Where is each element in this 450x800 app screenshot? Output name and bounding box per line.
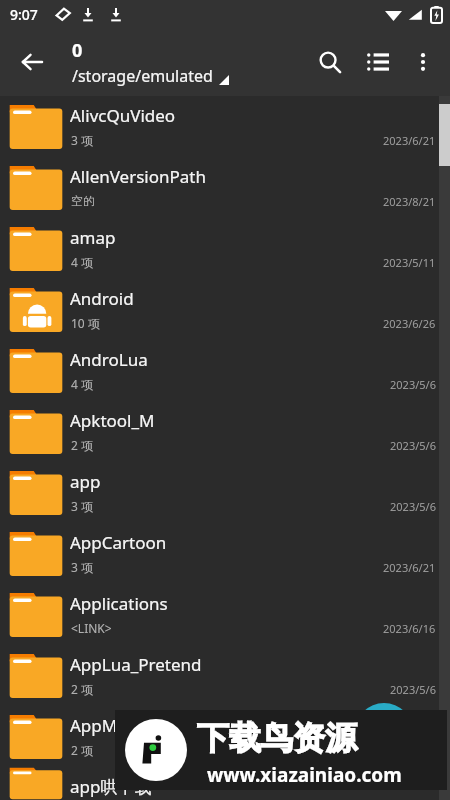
staticText: AppM: [70, 714, 360, 737]
staticText: 3 项: [71, 498, 93, 514]
staticText: 2023/6/21: [383, 560, 436, 575]
button[interactable]: app哄下载: [0, 767, 450, 800]
staticText: AlivcQuVideo: [70, 104, 360, 127]
staticText: AppCartoon: [70, 531, 360, 554]
staticText: amap: [70, 226, 360, 249]
staticText: 10 项: [71, 315, 100, 331]
staticText: 2023/5/6: [390, 682, 436, 697]
staticText: 2023/8/21: [383, 194, 436, 209]
staticText: 4 项: [71, 376, 93, 392]
staticText: Applications: [70, 592, 360, 615]
staticText: AllenVersionPath: [70, 165, 360, 188]
staticText: 2023/5/6: [390, 377, 436, 392]
staticText: 3 项: [71, 559, 93, 575]
staticText: 2023/5/6: [390, 438, 436, 453]
staticText: AppLua_Pretend: [70, 653, 360, 676]
button[interactable]: app: [0, 462, 450, 523]
button[interactable]: More options: [402, 38, 444, 86]
button[interactable]: AppCartoon: [0, 523, 450, 584]
staticText: 4 项: [71, 254, 93, 270]
button[interactable]: Add: [355, 703, 413, 761]
button[interactable]: Android: [0, 279, 450, 340]
staticText: AndroLua: [70, 348, 360, 371]
staticText: 2 项: [71, 742, 93, 758]
button[interactable]: AllenVersionPath: [0, 157, 450, 218]
button[interactable]: amap: [0, 218, 450, 279]
button[interactable]: Apktool_M: [0, 401, 450, 462]
staticText: 2 项: [71, 437, 93, 453]
staticText: Apktool_M: [70, 409, 360, 432]
staticText: 2023/6/21: [383, 133, 436, 148]
button[interactable]: AppLua_Pretend: [0, 645, 450, 706]
staticText: <LINK>: [71, 620, 112, 636]
staticText: app: [70, 470, 360, 493]
button[interactable]: AppM: [0, 706, 450, 767]
button[interactable]: Applications: [0, 584, 450, 645]
staticText: 9:07: [10, 5, 38, 24]
staticText: 3 项: [71, 132, 93, 148]
staticText: /storage/emulated: [72, 65, 213, 87]
staticText: 下载鸟资源: [197, 718, 357, 758]
staticText: app哄下载: [70, 775, 360, 798]
button[interactable]: Search: [306, 38, 354, 86]
staticText: 2 项: [71, 681, 93, 697]
staticText: www.xiazainiao.com: [207, 762, 402, 788]
staticText: 2023/6/16: [383, 621, 436, 636]
staticText: 2023/6/26: [383, 316, 436, 331]
staticText: 0: [72, 38, 83, 63]
staticText: 2023/5/6: [390, 499, 436, 514]
staticText: Android: [70, 287, 360, 310]
button[interactable]: Back: [8, 38, 56, 86]
button[interactable]: 0: [72, 38, 229, 87]
button[interactable]: AndroLua: [0, 340, 450, 401]
staticText: 2023/5/11: [383, 255, 436, 270]
staticText: 空的: [71, 193, 95, 208]
button[interactable]: View mode: [354, 38, 402, 86]
button[interactable]: AlivcQuVideo: [0, 96, 450, 157]
